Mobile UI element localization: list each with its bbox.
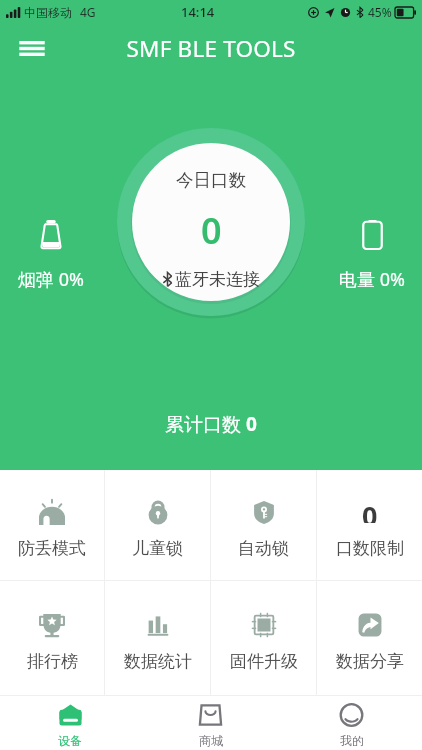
staticText: 烟弹 0% (18, 267, 84, 292)
button[interactable]: Menu (0, 24, 64, 72)
staticText: 45% (368, 4, 392, 20)
button[interactable]: 数据统计 (105, 581, 210, 695)
staticText: 排行榜 (27, 651, 78, 672)
staticText: 0 (246, 411, 257, 437)
button[interactable]: 我的 (281, 696, 422, 750)
button[interactable]: 烟弹 0% (6, 220, 96, 296)
staticText: 儿童锁 (132, 538, 183, 559)
staticText: 14:14 (181, 3, 215, 21)
button[interactable]: 数据分享 (317, 581, 422, 695)
button[interactable]: 电量 0% (327, 220, 417, 296)
button[interactable]: 0 (317, 470, 422, 580)
button[interactable]: 固件升级 (211, 581, 316, 695)
staticText: 今日口数 (176, 169, 246, 191)
button[interactable]: 防丢模式 (0, 470, 104, 580)
button[interactable]: 商城 (140, 696, 281, 750)
staticText: 4G (80, 4, 96, 20)
staticText: 数据统计 (124, 651, 192, 672)
staticText: 累计口数 (165, 411, 246, 437)
button[interactable]: 自动锁 (211, 470, 316, 580)
button[interactable]: 排行榜 (0, 581, 104, 695)
staticText: 口数限制 (336, 538, 404, 559)
button[interactable]: 累计口数 (165, 411, 257, 437)
staticText: 我的 (340, 733, 364, 748)
button[interactable]: 设备 (0, 696, 140, 750)
staticText: 设备 (58, 733, 82, 748)
staticText: 自动锁 (238, 538, 289, 559)
staticText: SMF BLE TOOLS (64, 33, 358, 64)
staticText: 防丢模式 (18, 538, 86, 559)
staticText: 0 (362, 497, 378, 523)
staticText: 数据分享 (336, 651, 404, 672)
staticText: 蓝牙未连接 (175, 269, 260, 290)
staticText: 商城 (199, 733, 223, 748)
staticText: 固件升级 (230, 651, 298, 672)
staticText: 中国移动 (24, 5, 72, 20)
staticText: 0 (201, 206, 222, 255)
button[interactable]: 儿童锁 (105, 470, 210, 580)
staticText: 电量 0% (339, 267, 405, 292)
